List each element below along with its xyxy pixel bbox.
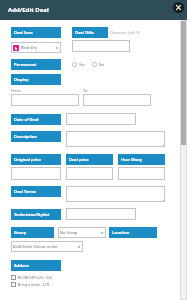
- staticText: Technician/Stylist: [14, 212, 50, 217]
- button[interactable]: [66, 208, 136, 220]
- staticText: Yes: [79, 62, 85, 67]
- staticText: No Group: [60, 230, 78, 235]
- staticText: To:: [83, 88, 88, 93]
- staticText: Deal price: [69, 157, 89, 162]
- button[interactable]: Original price: [11, 154, 61, 165]
- button[interactable]: [66, 167, 113, 180]
- staticText: Location: [112, 230, 130, 235]
- button[interactable]: BLOW DRY £20 - £20: [11, 274, 165, 281]
- staticText: Date of Deal: [14, 117, 39, 122]
- button[interactable]: Date of Deal: [11, 114, 61, 125]
- button[interactable]: Bring a mate - £78: [11, 281, 165, 288]
- button[interactable]: Location: [109, 227, 157, 238]
- button[interactable]: Description: [11, 131, 61, 142]
- staticText: Characters Left: 35: [110, 30, 140, 35]
- button[interactable]: No Group: [58, 227, 106, 238]
- staticText: Description: [14, 134, 37, 139]
- staticText: Add/Edit Deal: [8, 6, 49, 14]
- button[interactable]: [11, 167, 61, 180]
- button[interactable]: [66, 186, 165, 202]
- button[interactable]: Technician/Stylist: [11, 209, 61, 220]
- button[interactable]: Group: [11, 227, 54, 238]
- button[interactable]: Deal price: [66, 154, 113, 165]
- button[interactable]: Deal Terms: [11, 186, 61, 197]
- button[interactable]: b: [11, 42, 61, 53]
- button[interactable]: Close: [173, 2, 184, 13]
- staticText: Bold Street Colour center: [13, 244, 58, 249]
- button[interactable]: How Many: [118, 154, 165, 165]
- button[interactable]: Deal Title: [72, 27, 108, 38]
- button[interactable]: [11, 94, 79, 106]
- staticText: How Many: [121, 157, 142, 162]
- button[interactable]: Display: [11, 74, 61, 85]
- staticText: BLOW DRY £20 - £20: [18, 275, 53, 280]
- staticText: Original price: [14, 157, 42, 162]
- staticText: Display: [14, 77, 29, 82]
- button[interactable]: Permanent: [11, 59, 61, 70]
- button[interactable]: [66, 113, 136, 125]
- button[interactable]: [83, 94, 151, 106]
- staticText: From:: [11, 88, 21, 93]
- staticText: Bring a mate - £78: [18, 282, 49, 287]
- button[interactable]: [66, 131, 165, 147]
- staticText: Group: [14, 230, 27, 235]
- staticText: Deal Icon: [14, 30, 33, 35]
- staticText: No: [99, 62, 104, 67]
- button[interactable]: [72, 40, 130, 52]
- button[interactable]: Deal Icon: [11, 27, 61, 38]
- button[interactable]: Bold Street Colour center: [11, 241, 83, 252]
- button[interactable]: [118, 167, 165, 180]
- staticText: Deal Title: [75, 30, 94, 35]
- staticText: b: [15, 46, 18, 51]
- staticText: Permanent: [14, 62, 37, 67]
- staticText: Addons: [14, 263, 29, 268]
- button[interactable]: Addons: [11, 260, 61, 271]
- staticText: Deal Terms: [14, 189, 37, 194]
- staticText: Blow Dry: [21, 45, 37, 50]
